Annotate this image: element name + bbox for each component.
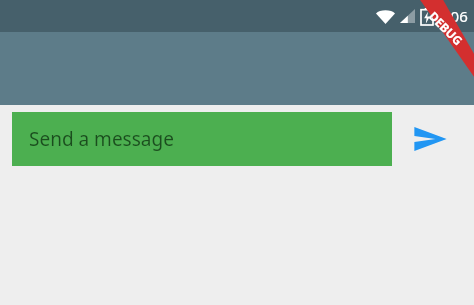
staticText: DEBUG <box>425 7 466 48</box>
button[interactable]: Send <box>406 115 454 163</box>
staticText: 2:06 <box>438 6 468 26</box>
button[interactable]: Send a message <box>12 112 392 166</box>
staticText: Send a message <box>29 126 174 152</box>
